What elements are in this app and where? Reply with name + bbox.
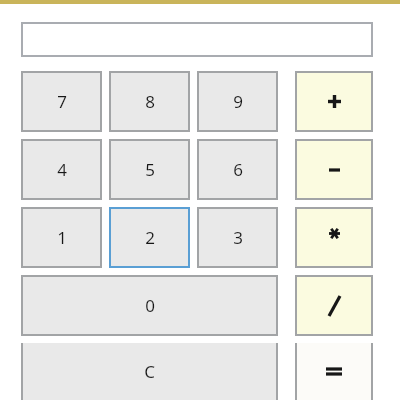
button[interactable]: 8	[109, 71, 190, 132]
button[interactable]: 1	[21, 207, 102, 268]
staticText: 5	[145, 158, 155, 181]
staticText: 6	[233, 158, 243, 181]
button[interactable]: 3	[197, 207, 278, 268]
staticText: 9	[233, 90, 243, 113]
button[interactable]: Multiply	[295, 207, 373, 268]
staticText: 3	[233, 226, 243, 249]
button[interactable]: Display	[21, 22, 373, 57]
button[interactable]: 2	[109, 207, 190, 268]
staticText: 8	[145, 90, 155, 113]
staticText: 2	[145, 226, 155, 249]
button[interactable]: 7	[21, 71, 102, 132]
button[interactable]: Equals	[295, 343, 373, 400]
button[interactable]: Subtract	[295, 139, 373, 200]
staticText: 7	[57, 90, 67, 113]
staticText: 4	[57, 158, 67, 181]
button[interactable]: 5	[109, 139, 190, 200]
button[interactable]: 9	[197, 71, 278, 132]
staticText: 1	[57, 226, 67, 249]
button[interactable]: 4	[21, 139, 102, 200]
staticText: C	[144, 360, 155, 383]
button[interactable]: 6	[197, 139, 278, 200]
staticText: 0	[145, 294, 155, 317]
button[interactable]: 0	[21, 275, 278, 336]
button[interactable]: C	[21, 343, 278, 400]
button[interactable]: Divide	[295, 275, 373, 336]
button[interactable]: Add	[295, 71, 373, 132]
